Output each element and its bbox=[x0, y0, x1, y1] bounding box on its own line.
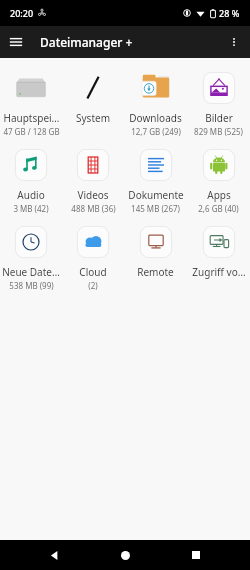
button[interactable]: Cloud bbox=[62, 218, 124, 295]
button[interactable]: Downloads bbox=[124, 64, 187, 141]
staticText: 145 MB (267) bbox=[131, 203, 180, 214]
staticText: Audio bbox=[17, 188, 45, 202]
button[interactable]: Back bbox=[37, 540, 71, 570]
staticText: 20:20 bbox=[10, 7, 34, 19]
staticText: Videos bbox=[77, 188, 109, 202]
staticText: Apps bbox=[207, 188, 231, 202]
staticText: Remote bbox=[137, 265, 174, 279]
staticText: 538 MB (99) bbox=[9, 280, 54, 291]
button[interactable]: Recent apps bbox=[179, 540, 213, 570]
button[interactable]: Audio bbox=[0, 141, 62, 218]
staticText: 829 MB (525) bbox=[194, 126, 243, 137]
staticText: Dateimanager + bbox=[40, 34, 133, 50]
button[interactable]: Remote bbox=[124, 218, 187, 294]
button[interactable]: Hauptspei… bbox=[0, 64, 62, 141]
staticText: 28 % bbox=[219, 7, 240, 19]
button[interactable]: Dokumente bbox=[124, 141, 187, 218]
staticText: (2) bbox=[88, 280, 98, 291]
staticText: 2,6 GB (40) bbox=[198, 203, 239, 214]
button[interactable]: More options bbox=[218, 26, 250, 58]
staticText: System bbox=[76, 111, 110, 125]
staticText: 3 MB (42) bbox=[13, 203, 49, 214]
button[interactable]: Bilder bbox=[187, 64, 250, 141]
staticText: Neue Date… bbox=[2, 265, 60, 279]
staticText: Bilder bbox=[205, 111, 233, 125]
button[interactable]: Zugriff vo… bbox=[187, 218, 250, 294]
button[interactable]: Open navigation drawer bbox=[0, 26, 32, 58]
staticText: Hauptspei… bbox=[3, 111, 60, 125]
button[interactable]: System bbox=[62, 64, 124, 140]
staticText: Downloads bbox=[129, 111, 182, 125]
button[interactable]: Home bbox=[108, 540, 142, 570]
staticText: 488 MB (36) bbox=[71, 203, 116, 214]
staticText: Cloud bbox=[79, 265, 107, 279]
staticText: Dokumente bbox=[128, 188, 184, 202]
staticText: 47 GB / 128 GB bbox=[3, 126, 60, 137]
button[interactable]: Videos bbox=[62, 141, 124, 218]
staticText: Zugriff vo… bbox=[192, 265, 246, 279]
button[interactable]: Apps bbox=[187, 141, 250, 218]
staticText: 12,7 GB (249) bbox=[131, 126, 181, 137]
button[interactable]: Neue Date… bbox=[0, 218, 62, 295]
